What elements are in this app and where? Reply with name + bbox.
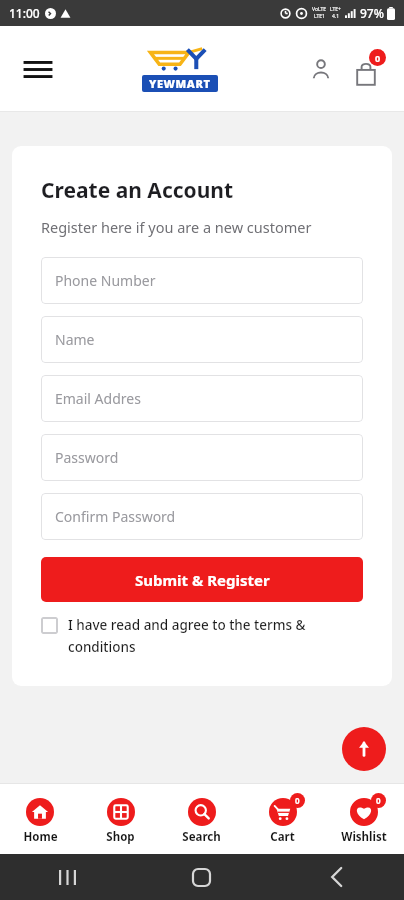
staticText: Submit & Register — [135, 570, 270, 590]
staticText: Shop — [106, 829, 135, 845]
button[interactable]: I have read and agree to the terms & con… — [41, 616, 363, 656]
button[interactable]: Scroll to top — [342, 727, 386, 771]
staticText: LTE+ — [330, 6, 341, 13]
button[interactable]: Recent apps — [0, 854, 134, 900]
button[interactable]: Home — [134, 854, 269, 900]
button[interactable]: Password — [41, 434, 363, 481]
staticText: 4.1 — [332, 13, 340, 20]
button[interactable]: Name — [41, 316, 363, 363]
staticText: 97% — [360, 5, 384, 21]
button[interactable]: Submit & Register — [41, 557, 363, 602]
button[interactable]: 0 — [323, 784, 404, 854]
staticText: VoLTE — [312, 6, 327, 13]
staticText: Search — [182, 829, 221, 845]
button[interactable]: Confirm Password — [41, 493, 363, 540]
button[interactable]: Email Addres — [41, 375, 363, 422]
button[interactable]: Cart — [346, 49, 386, 89]
staticText: Create an Account — [41, 176, 234, 205]
staticText: Cart — [270, 829, 295, 845]
button[interactable]: 0 — [242, 784, 323, 854]
button[interactable]: Account — [302, 50, 340, 88]
button[interactable]: Phone Number — [41, 257, 363, 304]
staticText: 0 — [376, 795, 381, 806]
staticText: Password — [55, 448, 119, 467]
button[interactable]: Back — [269, 854, 404, 900]
button[interactable]: Menu — [18, 49, 58, 89]
staticText: YEWMART — [149, 76, 211, 91]
button[interactable]: Shop — [80, 784, 161, 854]
staticText: 0 — [375, 52, 381, 64]
staticText: Wishlist — [341, 829, 387, 845]
button[interactable]: Search — [161, 784, 242, 854]
staticText: Register here if you are a new customer — [41, 217, 312, 237]
button[interactable]: Home — [0, 784, 80, 854]
staticText: Email Addres — [55, 389, 141, 408]
staticText: Name — [55, 330, 95, 349]
staticText: Phone Number — [55, 271, 156, 290]
staticText: Confirm Password — [55, 507, 176, 526]
staticText: 0 — [295, 795, 300, 806]
staticText: LTE1 — [314, 13, 325, 20]
staticText: I have read and agree to the terms & con… — [68, 616, 363, 656]
staticText: 11:00 — [9, 5, 40, 21]
staticText: Home — [23, 829, 58, 845]
